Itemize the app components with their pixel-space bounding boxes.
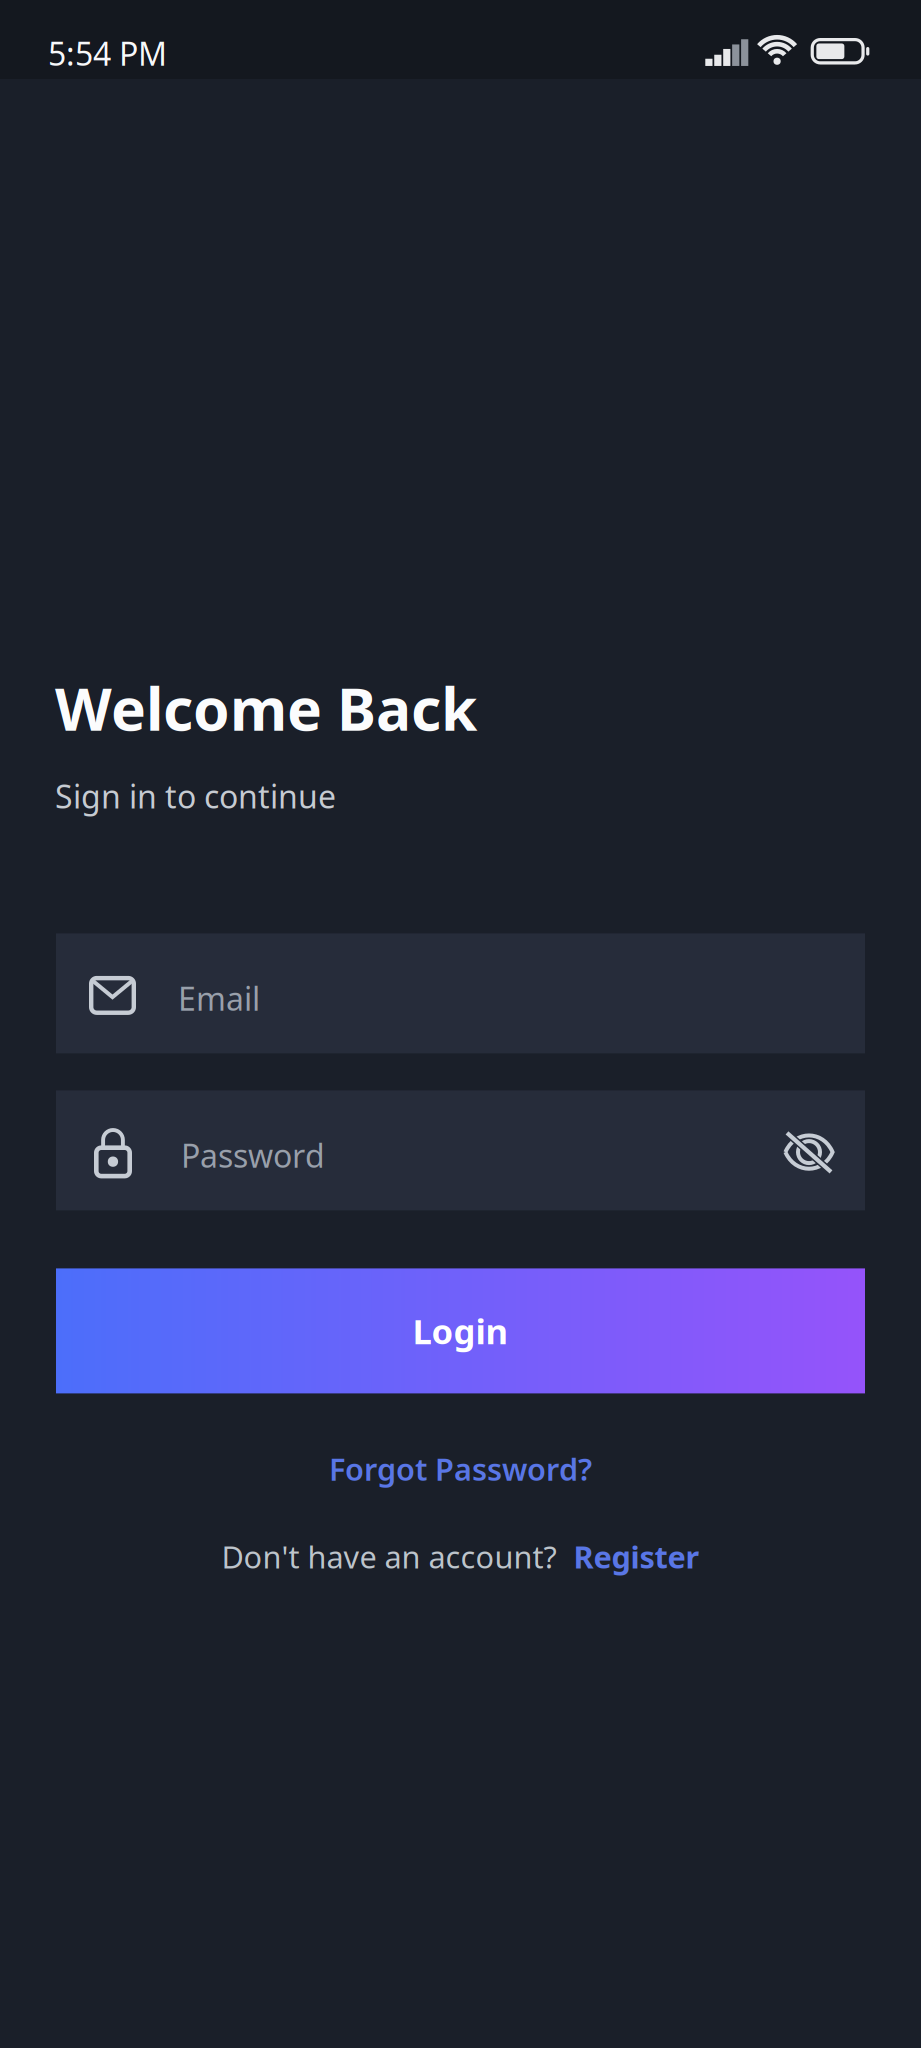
button[interactable]: Password [56, 1095, 783, 1215]
button[interactable]: Register [556, 1536, 699, 1577]
staticText: Register [573, 1536, 699, 1577]
staticText: Don't have an account? [221, 1536, 556, 1577]
staticText: Forgot Password? [329, 1448, 592, 1489]
staticText: Welcome Back [55, 669, 477, 747]
staticText: Login [412, 1308, 508, 1354]
button[interactable]: Login [56, 1268, 865, 1393]
staticText: Password [181, 1134, 325, 1177]
staticText: 5:54 PM [48, 32, 167, 74]
staticText: Sign in to continue [55, 775, 336, 817]
button[interactable]: Forgot Password? [329, 1448, 592, 1489]
button[interactable]: Email [56, 933, 865, 1053]
staticText: Email [178, 977, 260, 1020]
button[interactable]: Show password [783, 1095, 865, 1215]
